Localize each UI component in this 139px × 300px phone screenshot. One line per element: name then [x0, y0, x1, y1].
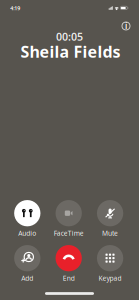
staticText: Mute [102, 229, 118, 238]
staticText: Audio [18, 229, 36, 238]
staticText: Add [21, 274, 33, 283]
button[interactable]: FaceTime [48, 200, 90, 239]
button[interactable]: Call details [117, 17, 135, 35]
staticText: Keypad [99, 274, 122, 283]
staticText: End [63, 274, 75, 283]
button[interactable]: Add [6, 245, 48, 284]
staticText: 4:19 [10, 5, 20, 12]
staticText: FaceTime [54, 229, 84, 238]
staticText: Sheila Fields [20, 41, 120, 62]
button[interactable]: End [48, 245, 90, 284]
button[interactable]: Mute [89, 200, 131, 239]
staticText: i [125, 21, 127, 31]
staticText: 00:05 [56, 29, 83, 44]
button[interactable]: Audio [6, 200, 48, 239]
button[interactable]: Keypad [89, 245, 131, 284]
